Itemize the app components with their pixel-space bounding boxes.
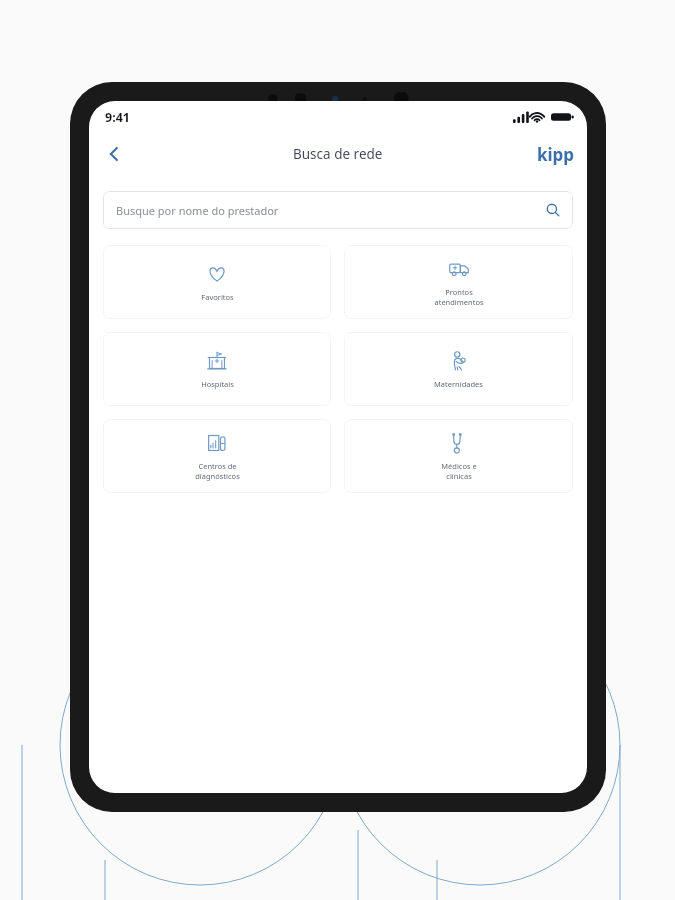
staticText: Prontos atendimentos: [434, 287, 484, 307]
button[interactable]: Hospitais: [103, 332, 331, 406]
button[interactable]: Voltar: [95, 135, 133, 173]
staticText: Maternidades: [434, 379, 483, 389]
staticText: Favoritos: [201, 292, 234, 302]
staticText: Hospitais: [201, 379, 234, 389]
staticText: 9:41: [105, 109, 130, 126]
button[interactable]: Centros de diagnósticos: [103, 419, 331, 493]
staticText: Busca de rede: [293, 145, 383, 163]
button[interactable]: Prontos atendimentos: [344, 245, 573, 319]
staticText: Busque por nome do prestador: [116, 203, 279, 218]
staticText: kipp: [537, 143, 575, 166]
button[interactable]: Maternidades: [344, 332, 573, 406]
button[interactable]: kipp: [537, 143, 575, 166]
button[interactable]: Busque por nome do prestador: [103, 191, 573, 229]
staticText: Médicos e clínicas: [441, 461, 477, 481]
staticText: Centros de diagnósticos: [195, 461, 240, 481]
button[interactable]: Médicos e clínicas: [344, 419, 573, 493]
button[interactable]: Favoritos: [103, 245, 331, 319]
